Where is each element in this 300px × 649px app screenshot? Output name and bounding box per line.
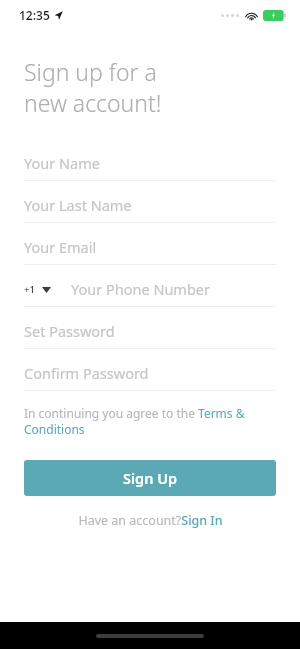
button[interactable]: Confirm Password <box>24 356 276 391</box>
staticText: Sign up for a new account! <box>24 56 162 119</box>
button[interactable]: Set Password <box>24 314 276 349</box>
button[interactable]: Have an account?Sign In <box>78 512 223 529</box>
staticText: 12:35 <box>19 7 50 23</box>
staticText: Confirm Password <box>24 363 149 383</box>
button[interactable]: Select country code <box>24 283 71 296</box>
button[interactable]: Sign Up <box>24 460 276 496</box>
staticText: Your Email <box>24 237 97 257</box>
staticText: Your Last Name <box>24 195 132 215</box>
button[interactable]: Your Name <box>24 146 276 181</box>
button[interactable]: Your Email <box>24 230 276 265</box>
button[interactable]: In continuing you agree to the Terms & C… <box>24 405 276 438</box>
staticText: +1 <box>24 283 35 296</box>
button[interactable]: Your Last Name <box>24 188 276 223</box>
button[interactable]: Select country code <box>24 272 276 307</box>
staticText: Your Phone Number <box>71 279 211 299</box>
staticText: Set Password <box>24 321 115 341</box>
staticText: Your Name <box>24 153 100 173</box>
staticText: Sign Up <box>123 468 178 488</box>
